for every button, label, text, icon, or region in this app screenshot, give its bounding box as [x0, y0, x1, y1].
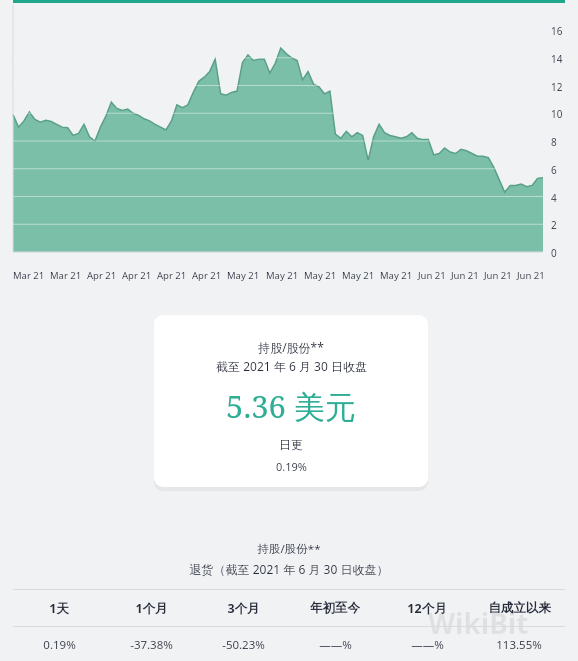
staticText: WikiBit: [428, 604, 529, 642]
staticText: 持股/股份**: [0, 541, 578, 557]
staticText: 0: [551, 246, 557, 260]
staticText: 持股/股份**: [258, 339, 324, 355]
staticText: 2: [551, 218, 557, 232]
staticText: May 21: [304, 269, 337, 282]
staticText: -37.38%: [130, 637, 173, 653]
button[interactable]: 自成立以来: [473, 590, 565, 626]
staticText: Apr 21: [87, 269, 117, 282]
button[interactable]: 1个月: [105, 590, 197, 626]
staticText: 自成立以来: [488, 600, 551, 616]
staticText: Apr 21: [157, 269, 187, 282]
staticText: ——%: [319, 637, 352, 653]
staticText: 退货（截至 2021 年 6 月 30 日收盘）: [0, 561, 578, 577]
staticText: 日更: [279, 437, 303, 452]
button[interactable]: 持股/股份**: [154, 315, 428, 487]
staticText: ——%: [411, 637, 444, 653]
staticText: May 21: [266, 269, 299, 282]
button[interactable]: 1天: [13, 590, 105, 626]
staticText: Jun 21: [484, 269, 512, 282]
staticText: Mar 21: [50, 269, 82, 282]
button[interactable]: 12个月: [381, 590, 473, 626]
staticText: Mar 21: [13, 269, 45, 282]
staticText: 12个月: [407, 600, 447, 617]
staticText: 3个月: [227, 600, 260, 617]
staticText: Apr 21: [122, 269, 152, 282]
staticText: 1天: [49, 600, 69, 617]
staticText: Jun 21: [418, 269, 446, 282]
staticText: 0.19%: [276, 459, 307, 474]
staticText: 截至 2021 年 6 月 30 日收盘: [216, 358, 367, 374]
button[interactable]: 3个月: [197, 590, 289, 626]
button[interactable]: 年初至今: [289, 590, 381, 626]
staticText: Jun 21: [451, 269, 479, 282]
staticText: May 21: [227, 269, 260, 282]
staticText: 113.55%: [496, 637, 542, 653]
staticText: 16: [551, 24, 563, 38]
staticText: 年初至今: [310, 600, 360, 616]
staticText: 12: [551, 80, 563, 94]
staticText: 8: [551, 135, 557, 149]
staticText: 4: [551, 191, 557, 205]
staticText: Apr 21: [192, 269, 222, 282]
staticText: 10: [551, 107, 563, 121]
staticText: May 21: [380, 269, 413, 282]
staticText: 5.36 美元: [226, 385, 356, 427]
staticText: 14: [551, 52, 563, 66]
staticText: 1个月: [135, 600, 168, 617]
staticText: 6: [551, 163, 557, 177]
staticText: Jun 21: [517, 269, 545, 282]
staticText: 0.19%: [43, 637, 76, 653]
staticText: -50.23%: [222, 637, 265, 653]
staticText: May 21: [342, 269, 375, 282]
